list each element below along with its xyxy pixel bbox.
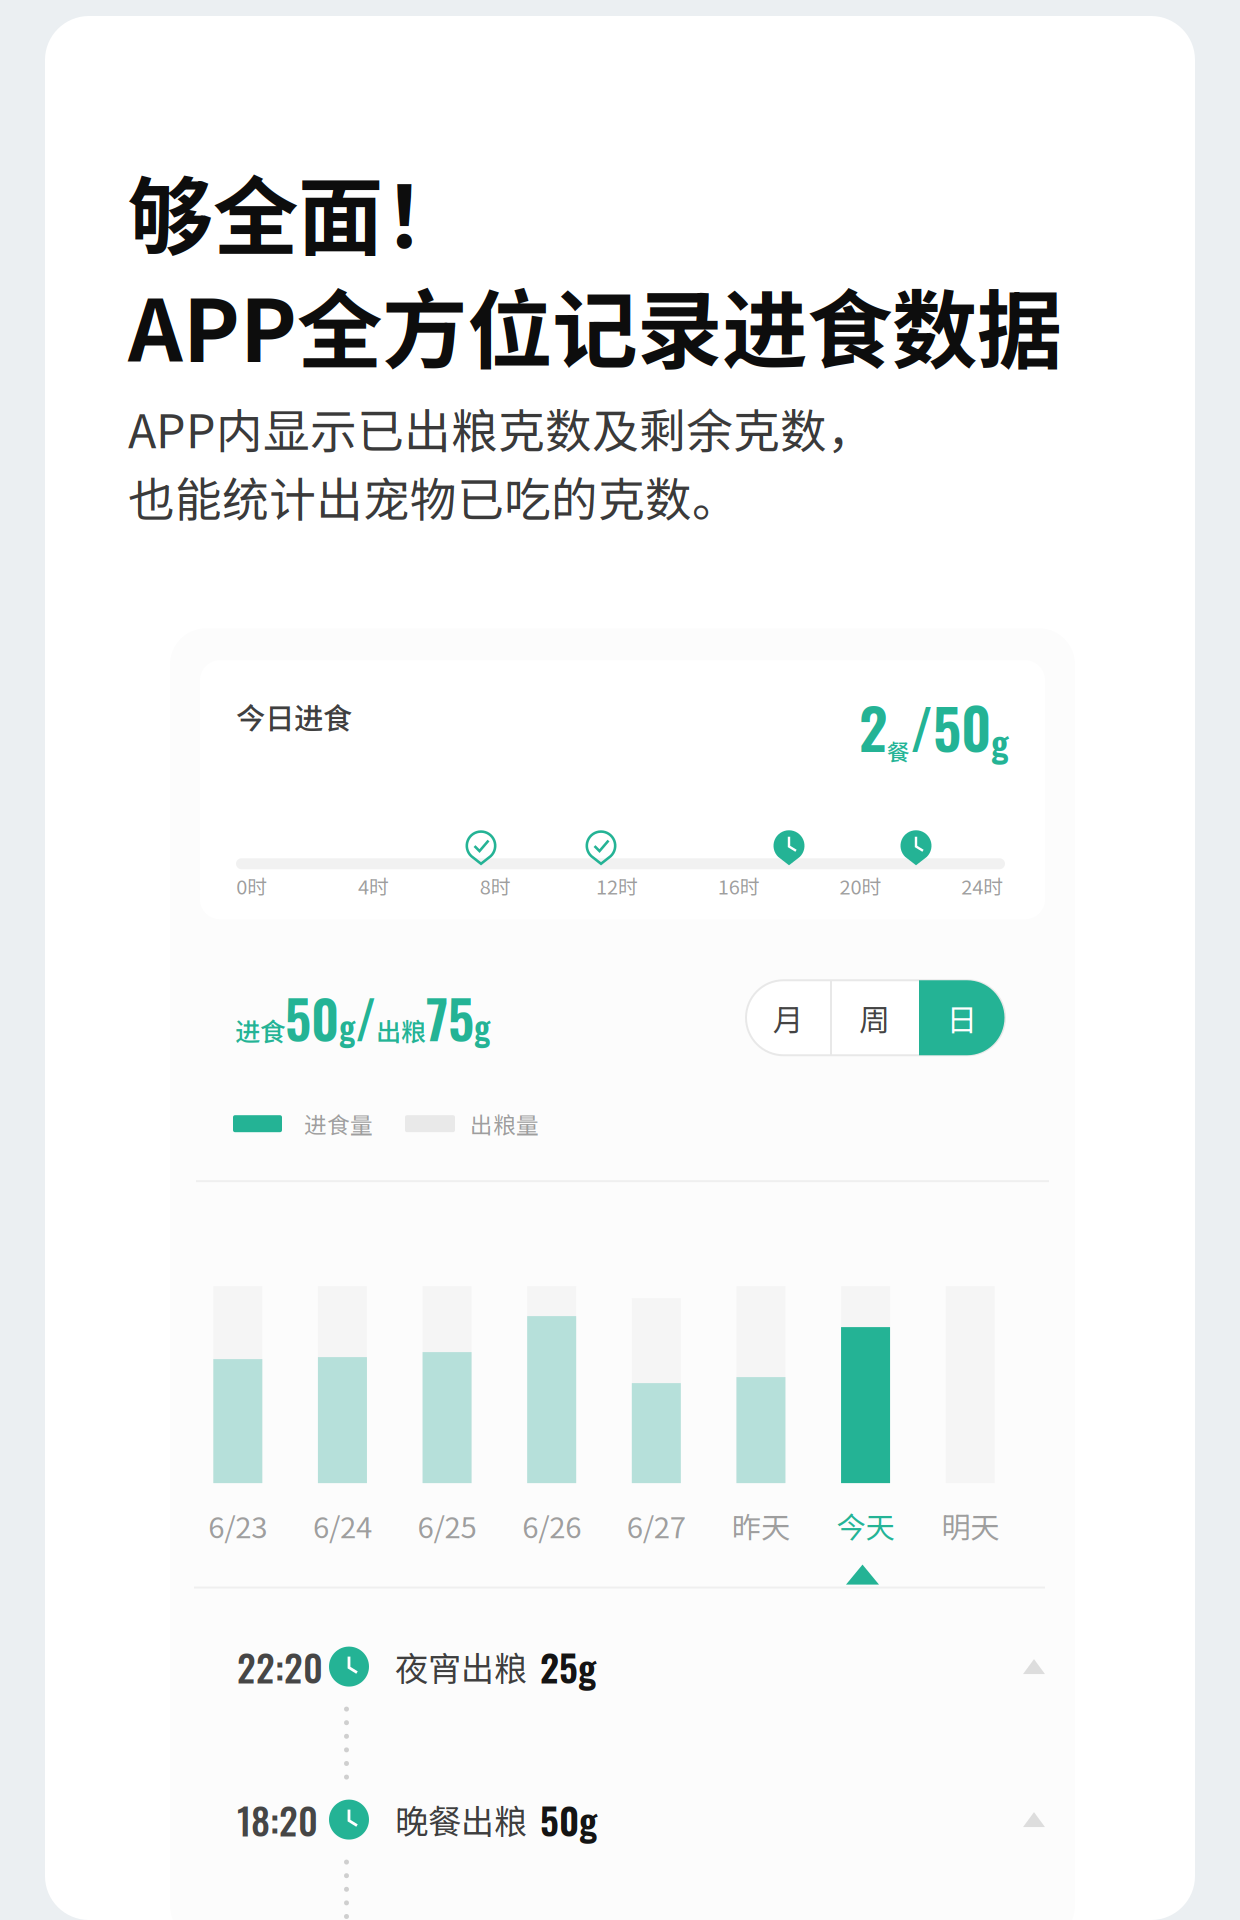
button[interactable]: 22:20 (237, 1636, 1045, 1698)
staticText: 18:20 (237, 1792, 318, 1847)
staticText: 6/23 (208, 1504, 267, 1547)
staticText: 6/24 (313, 1504, 372, 1547)
staticText: 0时 (236, 871, 267, 900)
staticText: 进食量 (304, 1107, 373, 1140)
staticText: 16时 (718, 871, 760, 900)
staticText: 出粮量 (470, 1107, 539, 1140)
staticText: g (474, 1001, 490, 1051)
staticText: 50 (285, 979, 339, 1056)
staticText: 进食 (235, 1012, 285, 1049)
staticText: 2 (859, 685, 887, 768)
button[interactable]: 18:20 (237, 1789, 1045, 1851)
staticText: 餐 (887, 734, 910, 767)
staticText: 6/26 (522, 1504, 581, 1547)
staticText: 12时 (596, 871, 638, 900)
staticText: 8时 (480, 871, 511, 900)
staticText: 20时 (839, 871, 881, 900)
staticText: 6/25 (418, 1504, 477, 1547)
staticText: 也能统计出宠物已吃的克数。 (128, 463, 739, 530)
staticText: 50g (540, 1792, 597, 1847)
staticText: 今天 (837, 1504, 895, 1547)
staticText: 25g (540, 1639, 596, 1694)
staticText: 周 (859, 996, 890, 1040)
staticText: / (910, 685, 933, 768)
staticText: 昨天 (732, 1504, 790, 1547)
staticText: 月 (772, 996, 803, 1040)
staticText: 晚餐出粮 (395, 1795, 527, 1844)
staticText: g (339, 1001, 355, 1051)
staticText: 24时 (961, 871, 1003, 900)
staticText: g (991, 715, 1009, 768)
staticText: 够全面！ (128, 149, 468, 273)
staticText: 夜宵出粮 (395, 1642, 527, 1691)
staticText: 50 (933, 685, 991, 768)
staticText: APP内显示已出粮克数及剩余克数， (128, 394, 874, 462)
staticText: APP全方位记录进食数据 (128, 263, 1062, 386)
staticText: 6/27 (627, 1504, 686, 1547)
button[interactable]: 月 (746, 980, 830, 1055)
staticText: 明天 (941, 1504, 999, 1547)
staticText: 75 (426, 979, 474, 1056)
button[interactable]: 周 (830, 980, 919, 1055)
staticText: 日 (946, 996, 977, 1040)
staticText: 22:20 (237, 1639, 323, 1694)
button[interactable]: 日 (919, 980, 1005, 1055)
staticText: 4时 (358, 871, 389, 900)
staticText: 今日进食 (236, 695, 352, 738)
staticText: 出粮 (376, 1012, 426, 1049)
staticText: / (355, 979, 376, 1056)
